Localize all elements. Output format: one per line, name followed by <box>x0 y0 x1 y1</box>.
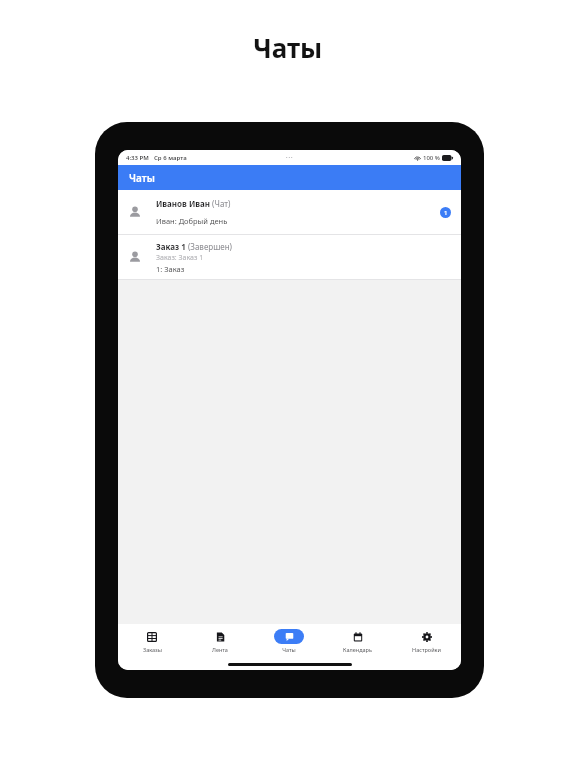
staticText: 4:33 PM <box>126 154 149 162</box>
staticText: Календарь <box>343 646 372 653</box>
staticText: Чаты <box>282 646 296 653</box>
button[interactable]: Заказ 1 (Завершен) <box>118 235 461 279</box>
button[interactable]: Иванов Иван (Чат) <box>118 190 461 234</box>
button[interactable]: Календарь <box>323 624 392 658</box>
staticText: Настройки <box>412 646 441 653</box>
staticText: Заказы <box>143 646 162 653</box>
staticText: Иванов Иван (Чат) <box>156 198 231 209</box>
staticText: Чаты <box>129 171 155 185</box>
button[interactable]: Настройки <box>392 624 461 658</box>
staticText: 1: Заказ <box>156 264 185 274</box>
staticText: 100 % <box>423 154 440 162</box>
staticText: Лента <box>212 646 228 653</box>
button[interactable]: Лента <box>186 624 254 658</box>
staticText: • • • <box>286 155 293 160</box>
staticText: 1 <box>444 209 448 217</box>
staticText: Ср 6 марта <box>154 154 187 162</box>
staticText: Заказ: Заказ 1 <box>156 253 204 263</box>
button[interactable]: Чаты <box>254 624 323 658</box>
staticText: Чаты <box>253 30 323 65</box>
staticText: Заказ 1 (Завершен) <box>156 241 233 252</box>
button[interactable]: Заказы <box>118 624 186 658</box>
staticText: Иван: Добрый день <box>156 216 228 226</box>
